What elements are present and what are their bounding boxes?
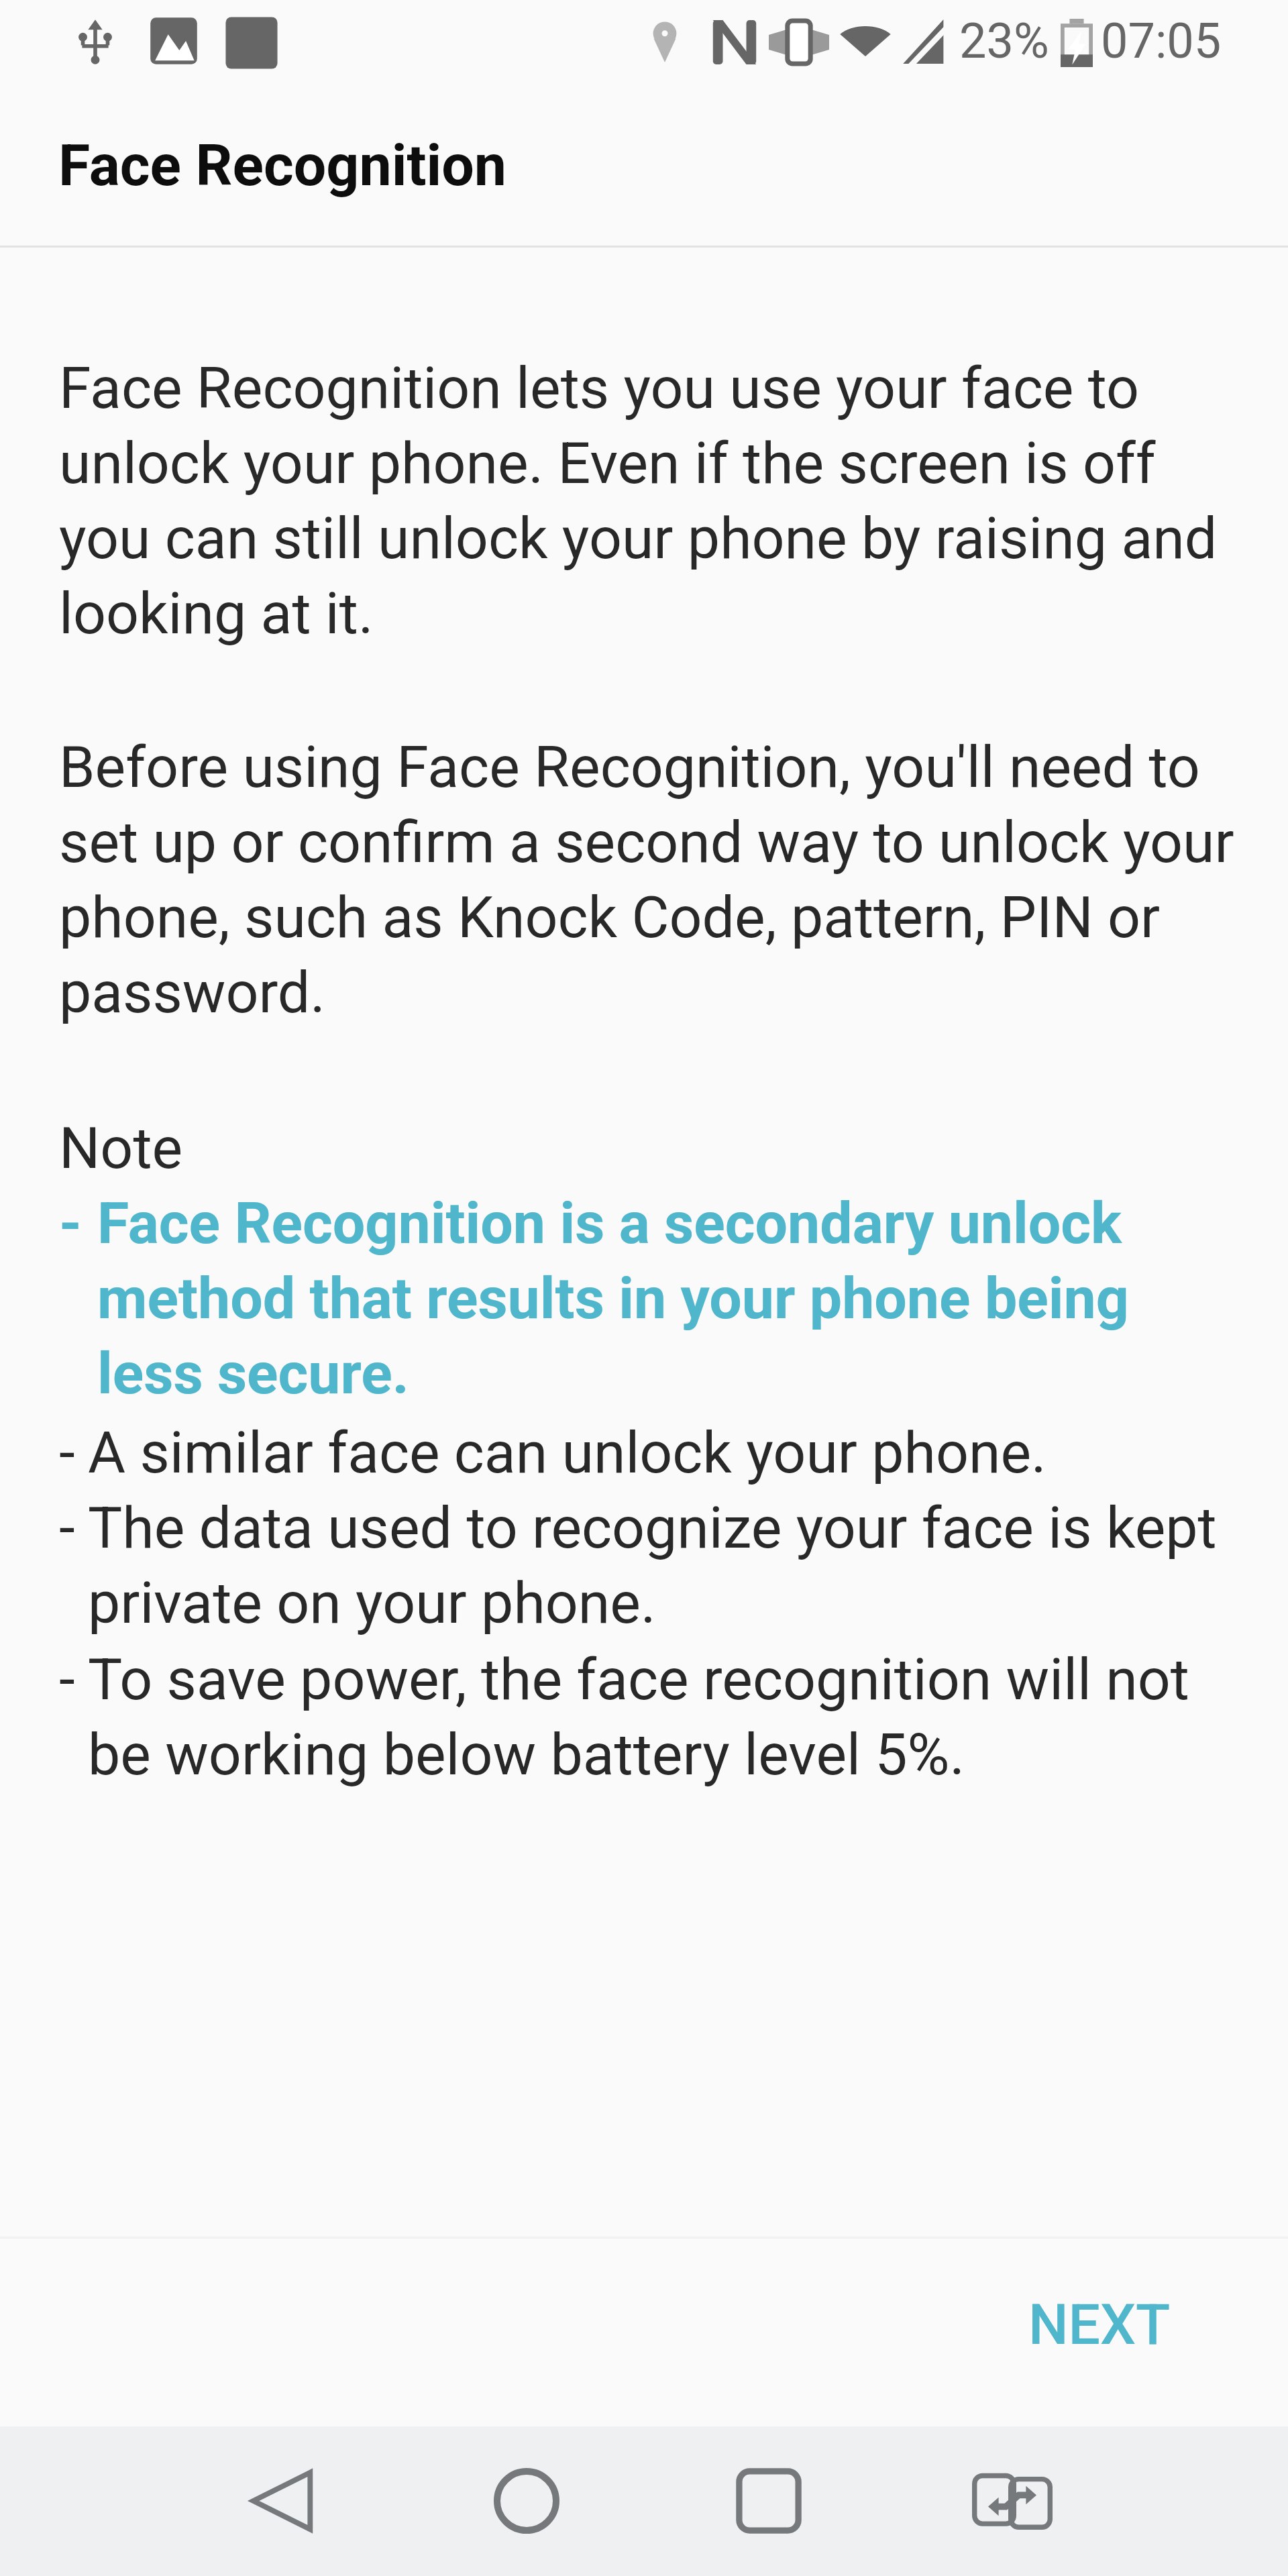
button[interactable]: Multi window bbox=[938, 2426, 1087, 2575]
staticText: The data used to recognize your face is … bbox=[88, 1494, 1240, 1637]
staticText: 07:05 bbox=[1101, 13, 1222, 69]
staticText: Before using Face Recognition, you'll ne… bbox=[59, 733, 1240, 1026]
staticText: Face Recognition lets you use your face … bbox=[59, 354, 1240, 647]
button[interactable]: Back bbox=[207, 2426, 356, 2575]
staticText: Face Recognition is a secondary unlock m… bbox=[97, 1189, 1240, 1407]
staticText: Face Recognition bbox=[58, 131, 507, 199]
staticText: - bbox=[59, 1189, 82, 1257]
staticText: - bbox=[59, 1646, 75, 1713]
staticText: Note bbox=[59, 1114, 183, 1182]
staticText: NEXT bbox=[1028, 2292, 1171, 2357]
button[interactable]: Home bbox=[452, 2426, 601, 2575]
button[interactable]: NEXT bbox=[977, 2251, 1222, 2398]
staticText: A similar face can unlock your phone. bbox=[88, 1419, 1046, 1487]
staticText: - bbox=[59, 1419, 75, 1487]
staticText: To save power, the face recognition will… bbox=[88, 1646, 1240, 1788]
staticText: - bbox=[59, 1494, 75, 1562]
staticText: 23% bbox=[959, 13, 1049, 69]
button[interactable]: Recent apps bbox=[694, 2426, 843, 2575]
